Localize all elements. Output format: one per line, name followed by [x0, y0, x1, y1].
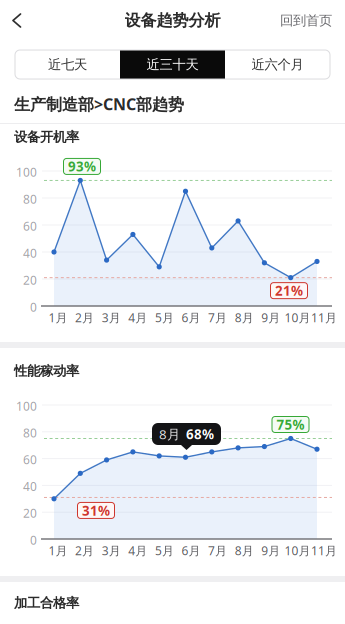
- staticText: 2月: [75, 542, 94, 558]
- staticText: 5月: [155, 309, 174, 325]
- staticText: 近三十天: [146, 56, 198, 73]
- staticText: 10月: [284, 542, 310, 558]
- staticText: 5月: [155, 542, 174, 558]
- staticText: 10月: [284, 309, 310, 325]
- staticText: 0: [30, 299, 37, 315]
- button[interactable]: 回到首页: [267, 0, 345, 41]
- staticText: 近七天: [48, 56, 87, 73]
- staticText: 加工合格率: [14, 595, 79, 611]
- staticText: 7月: [208, 542, 227, 558]
- staticText: 回到首页: [280, 12, 332, 29]
- staticText: 80: [23, 425, 37, 441]
- staticText: 21%: [275, 282, 303, 299]
- staticText: 生产制造部>CNC部趋势: [14, 93, 184, 115]
- staticText: 40: [23, 478, 37, 494]
- button[interactable]: 近六个月: [225, 50, 330, 79]
- staticText: 100: [16, 164, 37, 180]
- staticText: 11月: [311, 309, 337, 325]
- staticText: 8月: [159, 425, 180, 443]
- staticText: 近六个月: [251, 56, 303, 73]
- staticText: 0: [30, 532, 37, 548]
- staticText: 20: [23, 272, 37, 288]
- staticText: 8月: [235, 309, 254, 325]
- staticText: 1月: [48, 309, 67, 325]
- staticText: 60: [23, 452, 37, 467]
- button[interactable]: 近七天: [15, 50, 120, 79]
- staticText: 6月: [181, 542, 200, 558]
- staticText: 性能稼动率: [14, 363, 79, 379]
- staticText: 100: [16, 398, 37, 414]
- staticText: 31%: [82, 502, 110, 519]
- staticText: 93%: [68, 158, 96, 175]
- staticText: 2月: [75, 309, 94, 325]
- staticText: 68%: [186, 425, 214, 443]
- staticText: 6月: [181, 309, 200, 325]
- staticText: 20: [23, 505, 37, 521]
- staticText: 4月: [128, 309, 147, 325]
- staticText: 设备趋势分析: [124, 11, 220, 30]
- staticText: 3月: [102, 542, 121, 558]
- staticText: 7月: [208, 309, 227, 325]
- staticText: 9月: [261, 542, 280, 558]
- staticText: 40: [23, 245, 37, 261]
- staticText: 9月: [261, 309, 280, 325]
- staticText: 75%: [276, 416, 304, 433]
- staticText: 4月: [128, 542, 147, 558]
- staticText: 60: [23, 218, 37, 234]
- staticText: 8月: [235, 542, 254, 558]
- staticText: 设备开机率: [14, 129, 79, 145]
- button[interactable]: 近三十天: [120, 50, 225, 79]
- staticText: 3月: [102, 309, 121, 325]
- staticText: 80: [23, 191, 37, 207]
- staticText: 11月: [311, 542, 337, 558]
- button[interactable]: Back: [0, 1, 33, 40]
- staticText: 1月: [48, 542, 67, 558]
